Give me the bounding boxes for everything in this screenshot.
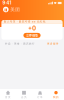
staticText: 外卖 · 美食 · 酒店旅行 (5, 42, 35, 45)
staticText: +0 (28, 25, 36, 32)
staticText: 新人专享 · 最高可得 88 元红包 (4, 20, 46, 23)
staticText: 更多服务 (47, 42, 59, 45)
button[interactable]: Profile (48, 89, 64, 100)
button[interactable]: 美团 (0, 6, 20, 13)
button[interactable]: Orders (32, 89, 48, 100)
staticText: 美团 (10, 7, 20, 12)
staticText: 会员 (21, 96, 27, 99)
staticText: 立即领取 (26, 33, 38, 37)
staticText: 9:41 (2, 0, 11, 6)
button[interactable]: Home (0, 89, 16, 100)
staticText: 订单 (37, 96, 43, 99)
button[interactable]: 立即领取 (23, 33, 41, 38)
staticText: 我的 (53, 96, 59, 99)
button[interactable]: Membership (16, 89, 32, 100)
staticText: 首页 (5, 96, 11, 99)
